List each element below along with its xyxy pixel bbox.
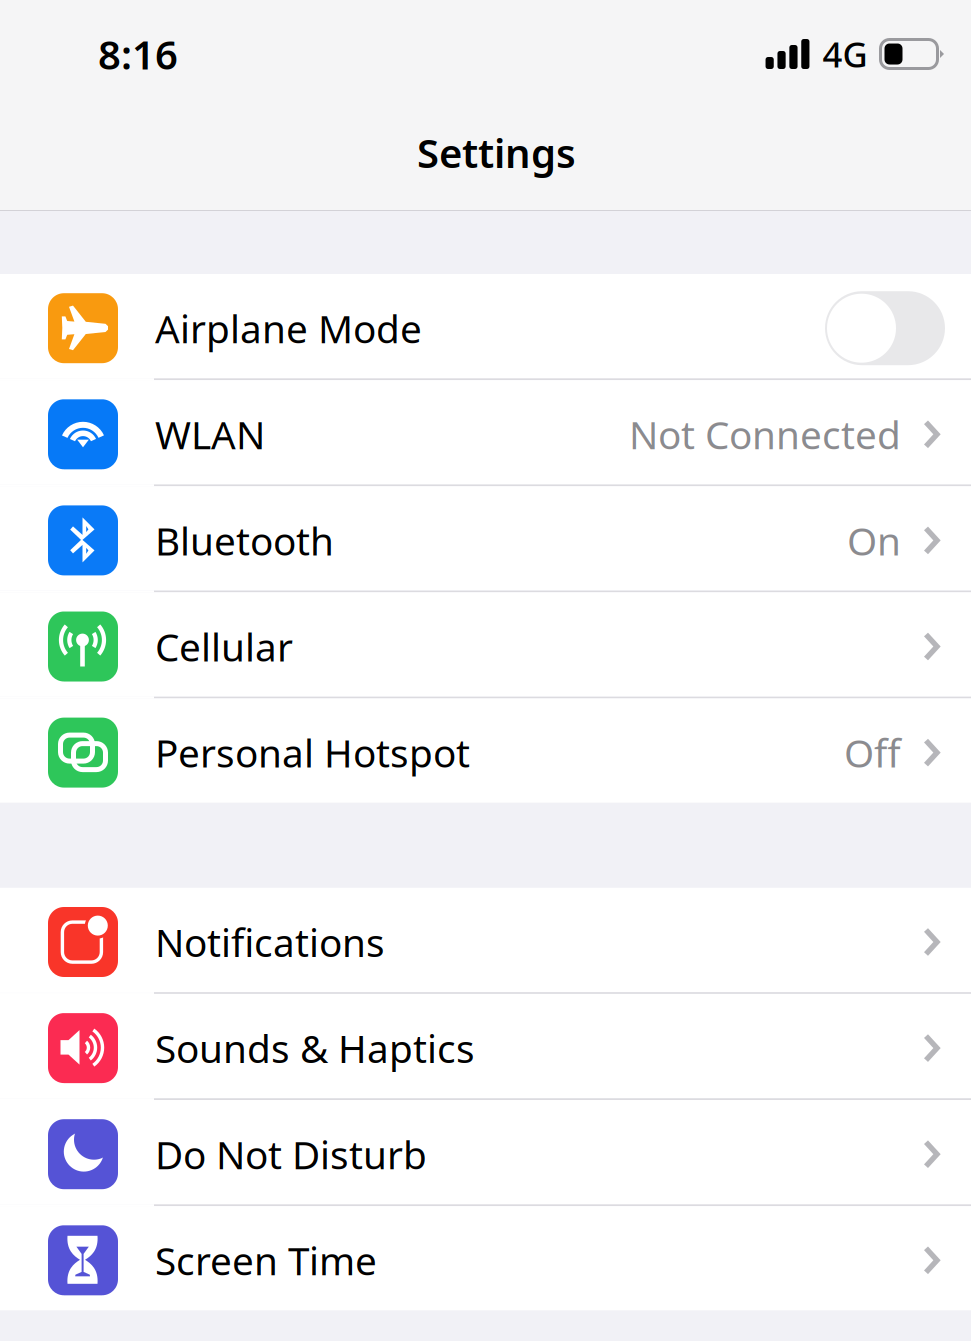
button[interactable]: Notifications — [0, 888, 971, 992]
staticText: Sounds & Haptics — [155, 1022, 475, 1074]
staticText: Notifications — [155, 916, 385, 968]
button[interactable]: Sounds & Haptics — [0, 994, 971, 1098]
staticText: Settings — [417, 126, 576, 179]
staticText: Personal Hotspot — [155, 727, 470, 778]
staticText: 8:16 — [98, 27, 178, 80]
staticText: On — [847, 515, 901, 566]
staticText: Do Not Disturb — [155, 1128, 427, 1180]
button[interactable]: Cellular — [0, 592, 971, 697]
staticText: Airplane Mode — [155, 302, 422, 354]
staticText: WLAN — [155, 409, 265, 460]
staticText: Not Connected — [629, 409, 901, 460]
button[interactable]: Bluetooth — [0, 486, 971, 591]
button[interactable]: Personal Hotspot — [0, 698, 971, 803]
staticText: Cellular — [155, 621, 293, 672]
button[interactable]: WLAN — [0, 380, 971, 484]
button[interactable]: Airplane Mode — [0, 274, 971, 378]
button[interactable]: Screen Time — [0, 1206, 971, 1310]
staticText: 4G — [822, 31, 867, 77]
staticText: Bluetooth — [155, 515, 334, 566]
button[interactable]: Do Not Disturb — [0, 1100, 971, 1204]
staticText: Off — [844, 727, 901, 778]
staticText: Screen Time — [155, 1235, 377, 1286]
